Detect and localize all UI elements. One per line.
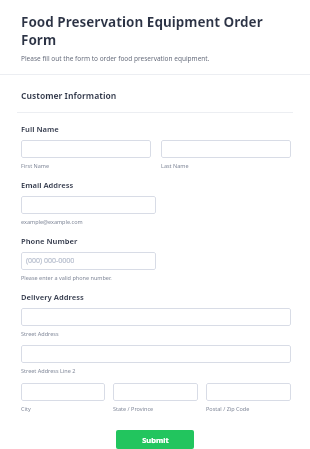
button[interactable]	[206, 383, 291, 401]
staticText: Delivery Address	[21, 292, 84, 302]
staticText: Full Name	[21, 124, 59, 134]
staticText: Street Address	[21, 330, 59, 337]
staticText: Postal / Zip Code	[206, 405, 250, 412]
button[interactable]	[21, 196, 156, 214]
button[interactable]	[113, 383, 198, 401]
staticText: Submit	[142, 435, 169, 445]
staticText: Food Preservation Equipment Order Form	[21, 13, 296, 49]
button[interactable]	[161, 140, 291, 158]
staticText: Last Name	[161, 162, 189, 169]
staticText: Please fill out the form to order food p…	[21, 54, 210, 63]
staticText: (000) 000-0000	[26, 256, 75, 266]
staticText: example@example.com	[21, 218, 83, 225]
button[interactable]	[21, 140, 151, 158]
staticText: State / Province	[113, 405, 154, 412]
staticText: Customer Information	[21, 90, 117, 102]
button[interactable]: (000) 000-0000	[21, 252, 156, 270]
staticText: Phone Number	[21, 236, 78, 246]
staticText: City	[21, 405, 31, 412]
button[interactable]	[21, 308, 291, 326]
button[interactable]	[21, 383, 105, 401]
staticText: First Name	[21, 162, 50, 169]
staticText: Please enter a valid phone number.	[21, 274, 112, 281]
staticText: Street Address Line 2	[21, 367, 76, 374]
button[interactable]: Submit	[116, 430, 194, 449]
button[interactable]	[21, 345, 291, 363]
staticText: Email Address	[21, 180, 74, 190]
